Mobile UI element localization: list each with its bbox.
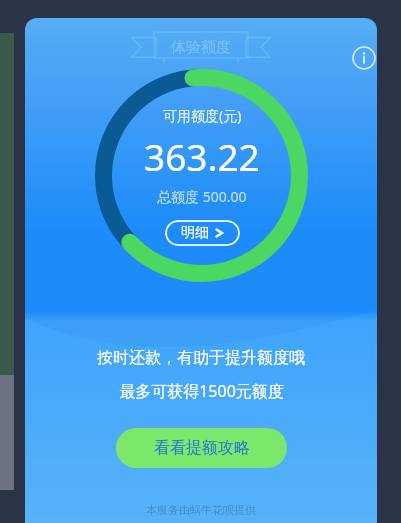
button[interactable]: 看看提额攻略 bbox=[116, 428, 287, 468]
staticText: 看看提额攻略 bbox=[154, 438, 250, 458]
staticText: 363.22 bbox=[144, 131, 260, 181]
button[interactable]: Information bbox=[342, 36, 377, 80]
staticText: 本服务由蜗牛花呗提供 bbox=[146, 503, 256, 517]
staticText: 按时还款，有助于提升额度哦 bbox=[97, 348, 305, 368]
staticText: 总额度 500.00 bbox=[157, 187, 247, 206]
button[interactable]: 明细 bbox=[165, 220, 240, 246]
staticText: 体验额度 bbox=[171, 38, 231, 57]
staticText: 可用额度(元) bbox=[163, 106, 242, 125]
staticText: 最多可获得1500元额度 bbox=[119, 380, 284, 402]
staticText: 明细 bbox=[181, 224, 209, 242]
